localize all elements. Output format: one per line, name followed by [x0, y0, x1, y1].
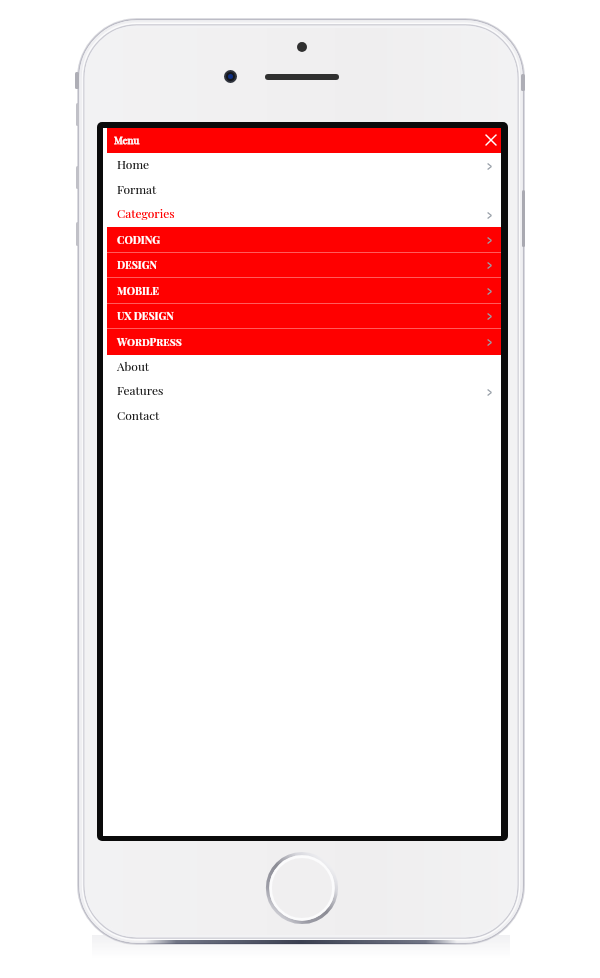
staticText: Contact [117, 407, 160, 423]
button[interactable]: Features [103, 379, 501, 404]
button[interactable]: Home [103, 153, 501, 178]
staticText: CODING [117, 233, 160, 247]
button[interactable]: DESIGN [107, 252, 501, 278]
staticText: MOBILE [117, 284, 159, 298]
button[interactable]: Menu [107, 128, 501, 153]
button[interactable]: WordPress [107, 329, 501, 355]
staticText: About [117, 358, 150, 374]
button[interactable]: MOBILE [107, 278, 501, 304]
staticText: About [117, 358, 150, 374]
staticText: DESIGN [117, 258, 158, 272]
button[interactable]: Format [103, 178, 501, 203]
staticText: WordPress [117, 335, 182, 349]
button[interactable]: CODING [107, 227, 501, 253]
staticText: Home [117, 156, 150, 172]
staticText: Contact [117, 407, 160, 423]
button[interactable]: About [103, 355, 501, 380]
staticText: Home [117, 156, 150, 172]
button[interactable]: Close [482, 131, 500, 149]
staticText: Format [117, 181, 157, 197]
staticText: Format [117, 181, 157, 197]
staticText: Features [117, 382, 164, 398]
staticText: Menu [114, 133, 140, 146]
staticText: Categories [117, 205, 175, 221]
staticText: Categories [117, 205, 175, 221]
button[interactable]: UX DESIGN [107, 303, 501, 329]
staticText: UX DESIGN [117, 309, 174, 323]
button[interactable]: Contact [103, 404, 501, 429]
button[interactable]: Categories [103, 202, 501, 227]
staticText: Features [117, 382, 164, 398]
